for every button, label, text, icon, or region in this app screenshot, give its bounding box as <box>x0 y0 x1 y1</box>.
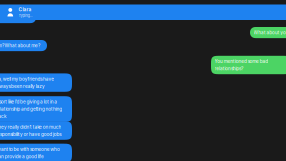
staticText: I want to be with someone who <box>0 146 60 152</box>
staticText: relationship and getting nothing <box>0 106 62 112</box>
staticText: Clara <box>19 6 32 12</box>
staticText: They really didn't take on much <box>0 124 61 130</box>
staticText: What about you <box>253 30 286 35</box>
staticText: can provide a good life <box>0 154 44 159</box>
button[interactable]: Clara <box>0 4 286 20</box>
staticText: You mentioned some bad <box>214 58 268 64</box>
staticText: that sounds nice <box>0 15 30 20</box>
staticText: Hmm? What about me? <box>0 43 40 48</box>
staticText: responsibility or have good jobs <box>0 131 61 137</box>
staticText: It sort like I'd be giving a lot in a <box>0 99 57 104</box>
staticText: back <box>0 113 7 119</box>
staticText: always been really lazy <box>0 83 45 89</box>
staticText: relationships? <box>214 66 243 71</box>
staticText: Ya, well my boyfriends have <box>0 76 54 82</box>
staticText: Typing... <box>19 13 33 18</box>
